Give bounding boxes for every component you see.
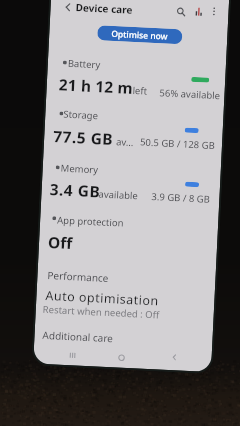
- staticText: available: [98, 187, 139, 202]
- staticText: Restart when needed : Off: [42, 303, 160, 321]
- staticText: Device care: [75, 0, 133, 17]
- staticText: Performance: [47, 268, 110, 285]
- staticText: Auto optimisation: [45, 287, 160, 309]
- button[interactable]: Recent apps: [64, 347, 81, 364]
- button[interactable]: More options: [205, 2, 222, 19]
- button[interactable]: Usage statistics: [190, 3, 207, 19]
- staticText: Optimise now: [111, 28, 168, 43]
- button[interactable]: Search: [172, 3, 189, 20]
- button[interactable]: Device care: [75, 0, 138, 19]
- staticText: 77.5 GB: [53, 125, 115, 149]
- button[interactable]: Home: [113, 349, 130, 366]
- staticText: Memory: [60, 161, 99, 176]
- staticText: Additional care: [42, 328, 114, 345]
- button[interactable]: Navigate up: [59, 0, 76, 15]
- button[interactable]: Back: [166, 349, 183, 366]
- button[interactable]: Optimise now: [97, 25, 183, 44]
- staticText: av…: [116, 135, 134, 149]
- staticText: Off: [48, 231, 74, 253]
- staticText: 3.4 GB: [49, 178, 101, 201]
- button[interactable]: [40, 282, 211, 316]
- staticText: 50.5 GB / 128 GB: [140, 135, 215, 152]
- staticText: Battery: [67, 57, 101, 71]
- staticText: 21 h 12 m: [58, 73, 134, 98]
- staticText: 56% available: [159, 86, 221, 102]
- staticText: App protection: [57, 213, 124, 230]
- staticText: left: [132, 84, 148, 98]
- staticText: Storage: [63, 108, 99, 122]
- staticText: 3.9 GB / 8 GB: [151, 190, 211, 206]
